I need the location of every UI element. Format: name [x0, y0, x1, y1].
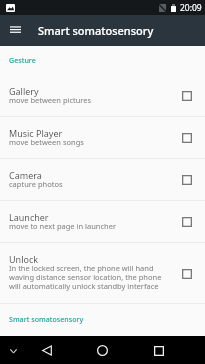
- staticText: 20:09: [180, 2, 202, 14]
- staticText: In the locked screen, the phone will han…: [9, 263, 172, 291]
- button[interactable]: Smart somatosensory: [0, 304, 205, 332]
- button[interactable]: Music Player: [0, 117, 205, 159]
- staticText: Unlock: [9, 253, 39, 265]
- staticText: Gallery: [9, 85, 39, 97]
- button[interactable]: Hide keyboard: [6, 343, 21, 358]
- staticText: capture photos: [9, 179, 63, 189]
- button[interactable]: Home: [94, 342, 111, 359]
- button[interactable]: Unlock: [0, 243, 205, 304]
- button[interactable]: Recent apps: [150, 342, 167, 359]
- staticText: move between songs: [9, 137, 84, 147]
- staticText: Smart somatosensory: [9, 314, 84, 324]
- button[interactable]: Gesture: [0, 46, 205, 75]
- staticText: move to next page in launcher: [9, 221, 117, 231]
- staticText: Smart somatosensory: [38, 23, 154, 38]
- staticText: Gesture: [9, 55, 36, 65]
- button[interactable]: Launcher: [0, 201, 205, 243]
- staticText: Music Player: [9, 127, 63, 139]
- button[interactable]: Back: [38, 342, 55, 359]
- button[interactable]: Gallery: [0, 75, 205, 117]
- button[interactable]: Open navigation drawer: [0, 15, 31, 46]
- staticText: Launcher: [9, 211, 49, 223]
- staticText: Camera: [9, 169, 42, 181]
- staticText: move between pictures: [9, 95, 92, 105]
- button[interactable]: Camera: [0, 159, 205, 201]
